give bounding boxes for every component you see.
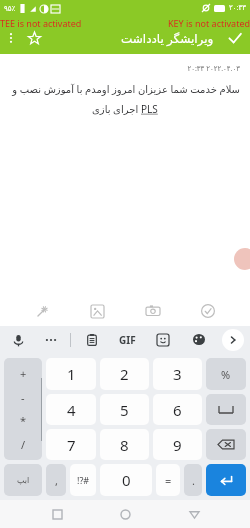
button[interactable]: 9	[153, 429, 202, 460]
staticText: /	[21, 437, 26, 452]
button[interactable]: 5	[100, 394, 149, 425]
button[interactable]: Confirm	[195, 298, 221, 324]
staticText: اجرای بازی	[92, 102, 141, 116]
button[interactable]: Stickers	[152, 329, 174, 351]
button[interactable]: More options	[0, 27, 22, 49]
staticText: 8	[120, 435, 129, 455]
button[interactable]: Space	[206, 394, 246, 425]
staticText: *	[20, 413, 27, 428]
button[interactable]: 3	[153, 358, 202, 390]
staticText: ابپ	[17, 476, 30, 485]
button[interactable]: Themes	[188, 329, 210, 351]
button[interactable]: Favorite	[22, 26, 46, 50]
staticText: !?#	[77, 474, 90, 486]
button[interactable]: +	[4, 358, 42, 460]
staticText: %	[221, 367, 231, 382]
staticText: سلام خدمت شما عزیزان امروز اومدم با آموز…	[10, 82, 240, 96]
staticText: +	[20, 366, 27, 381]
staticText: ۲۰:۳۳	[229, 3, 246, 13]
button[interactable]: Done	[222, 25, 248, 51]
button[interactable]: Home	[113, 502, 137, 526]
button[interactable]: 2	[100, 358, 149, 390]
button[interactable]: Recents	[45, 502, 69, 526]
staticText: -	[21, 390, 25, 405]
staticText: 3	[173, 364, 182, 384]
button[interactable]: Backspace	[206, 429, 246, 460]
button[interactable]: .	[184, 464, 202, 496]
button[interactable]: 1	[46, 358, 96, 390]
staticText: ویرایشگر یادداشت	[121, 30, 214, 46]
staticText: 2	[120, 364, 129, 384]
button[interactable]: !?#	[70, 464, 96, 496]
staticText: ,	[55, 473, 58, 488]
button[interactable]: ابپ	[4, 464, 42, 496]
button[interactable]: Enter	[206, 464, 246, 496]
staticText: ۹۵٪	[4, 5, 16, 13]
button[interactable]: Effects	[29, 298, 55, 324]
button[interactable]: Camera	[140, 298, 166, 324]
staticText: KEY is not activated	[168, 17, 250, 29]
staticText: 4	[67, 400, 76, 420]
button[interactable]: 7	[46, 429, 96, 460]
button[interactable]: Expand	[222, 329, 244, 351]
button[interactable]: Clipboard	[81, 329, 103, 351]
staticText: 9	[173, 435, 182, 455]
button[interactable]: GIF	[117, 333, 138, 347]
button[interactable]: 8	[100, 429, 149, 460]
button[interactable]: Back	[182, 502, 206, 526]
button[interactable]: 6	[153, 394, 202, 425]
staticText: 1	[67, 364, 76, 384]
staticText: =	[165, 473, 172, 488]
staticText: .	[192, 473, 195, 488]
button[interactable]: ,	[46, 464, 66, 496]
staticText: 0	[122, 470, 131, 490]
button[interactable]: Gallery	[84, 298, 110, 324]
button[interactable]: Voice input	[6, 328, 30, 352]
staticText: GIF	[119, 333, 136, 347]
staticText: 7	[67, 435, 76, 455]
button[interactable]: =	[156, 464, 180, 496]
button[interactable]: More	[40, 329, 62, 351]
button[interactable]: 0	[100, 464, 152, 496]
staticText: 5	[120, 400, 129, 420]
staticText: ۲۰:۳۳ ۲۰۲۲.۰۴.۰۳	[10, 64, 240, 74]
staticText: PLS	[141, 102, 158, 116]
staticText: 6	[173, 400, 182, 420]
button[interactable]: 4	[46, 394, 96, 425]
staticText: TEE is not activated	[0, 17, 82, 29]
button[interactable]: %	[206, 358, 246, 390]
